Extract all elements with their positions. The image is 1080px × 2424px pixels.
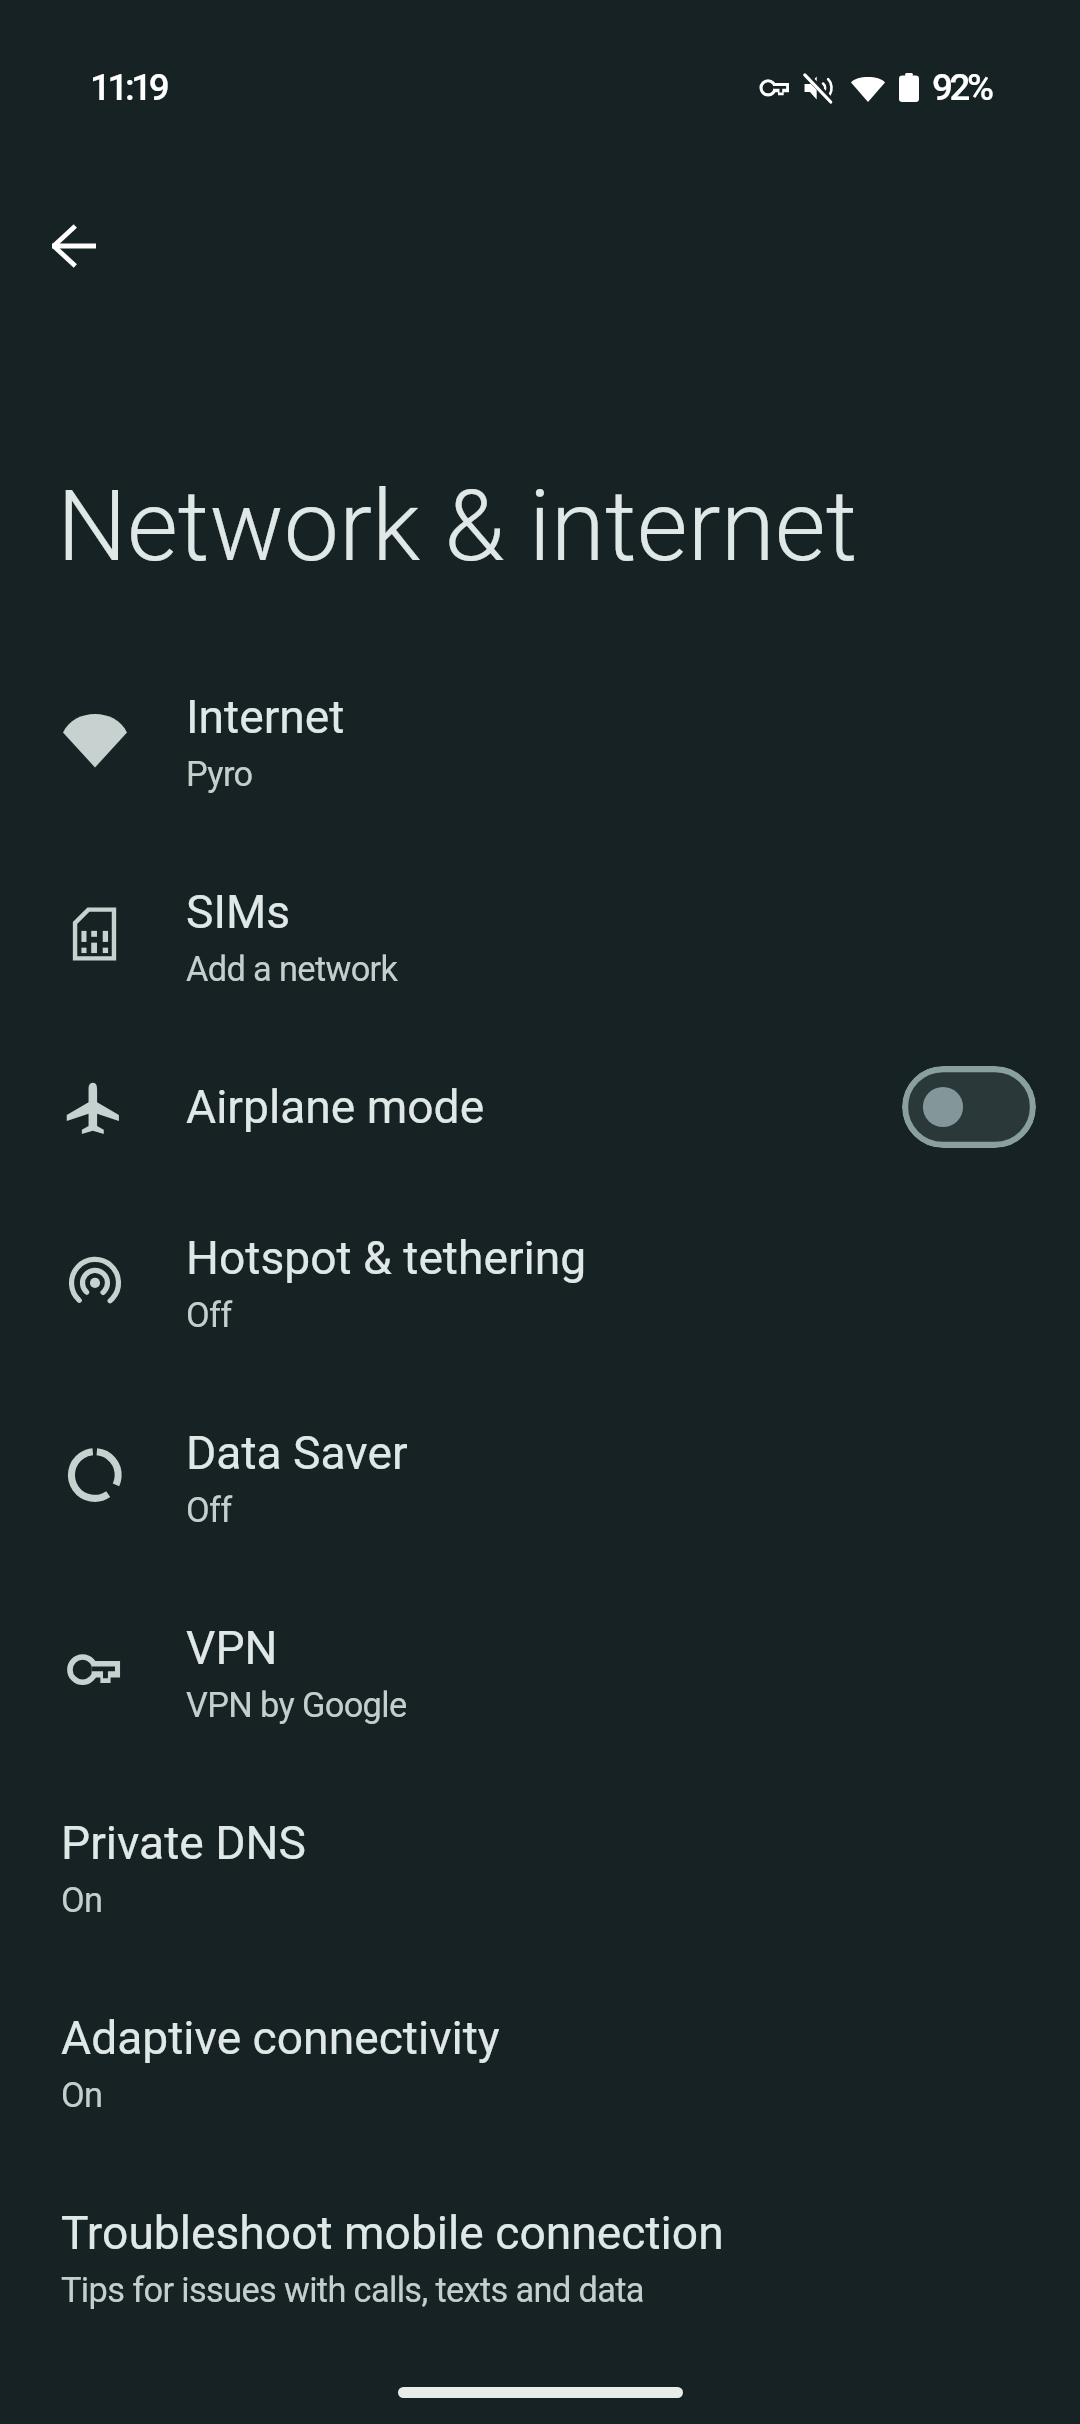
staticText: Hotspot & tethering	[186, 1231, 587, 1285]
staticText: 92%	[932, 66, 991, 109]
staticText: Internet	[186, 690, 345, 744]
button[interactable]: Private DNS	[0, 1767, 1080, 1962]
button[interactable]: Adaptive connectivity	[0, 1962, 1080, 2157]
button[interactable]: Airplane mode	[0, 1031, 1080, 1182]
staticText: Data Saver	[186, 1426, 408, 1480]
button[interactable]: Troubleshoot mobile connection	[0, 2157, 1080, 2352]
button[interactable]: Airplane mode toggle	[902, 1066, 1036, 1148]
staticText: VPN	[186, 1621, 278, 1675]
button[interactable]: VPN	[0, 1572, 1080, 1767]
button[interactable]: Hotspot & tethering	[0, 1182, 1080, 1377]
staticText: On	[61, 1880, 103, 1920]
staticText: Private DNS	[61, 1816, 306, 1870]
button[interactable]: Data Saver	[0, 1377, 1080, 1572]
staticText: Add a network	[186, 949, 398, 989]
staticText: Pyro	[186, 754, 253, 794]
staticText: Off	[186, 1295, 232, 1335]
staticText: Tips for issues with calls, texts and da…	[61, 2270, 644, 2310]
staticText: Off	[186, 1490, 232, 1530]
staticText: Adaptive connectivity	[61, 2011, 500, 2065]
staticText: Airplane mode	[186, 1080, 485, 1134]
staticText: VPN by Google	[186, 1685, 407, 1725]
staticText: On	[61, 2075, 103, 2115]
button[interactable]: SIMs	[0, 836, 1080, 1031]
staticText: Troubleshoot mobile connection	[61, 2206, 724, 2260]
button[interactable]: Back	[21, 193, 126, 298]
staticText: SIMs	[186, 885, 291, 939]
button[interactable]: Internet	[0, 641, 1080, 836]
staticText: 11:19	[90, 66, 167, 109]
staticText: Network & internet	[57, 469, 858, 584]
